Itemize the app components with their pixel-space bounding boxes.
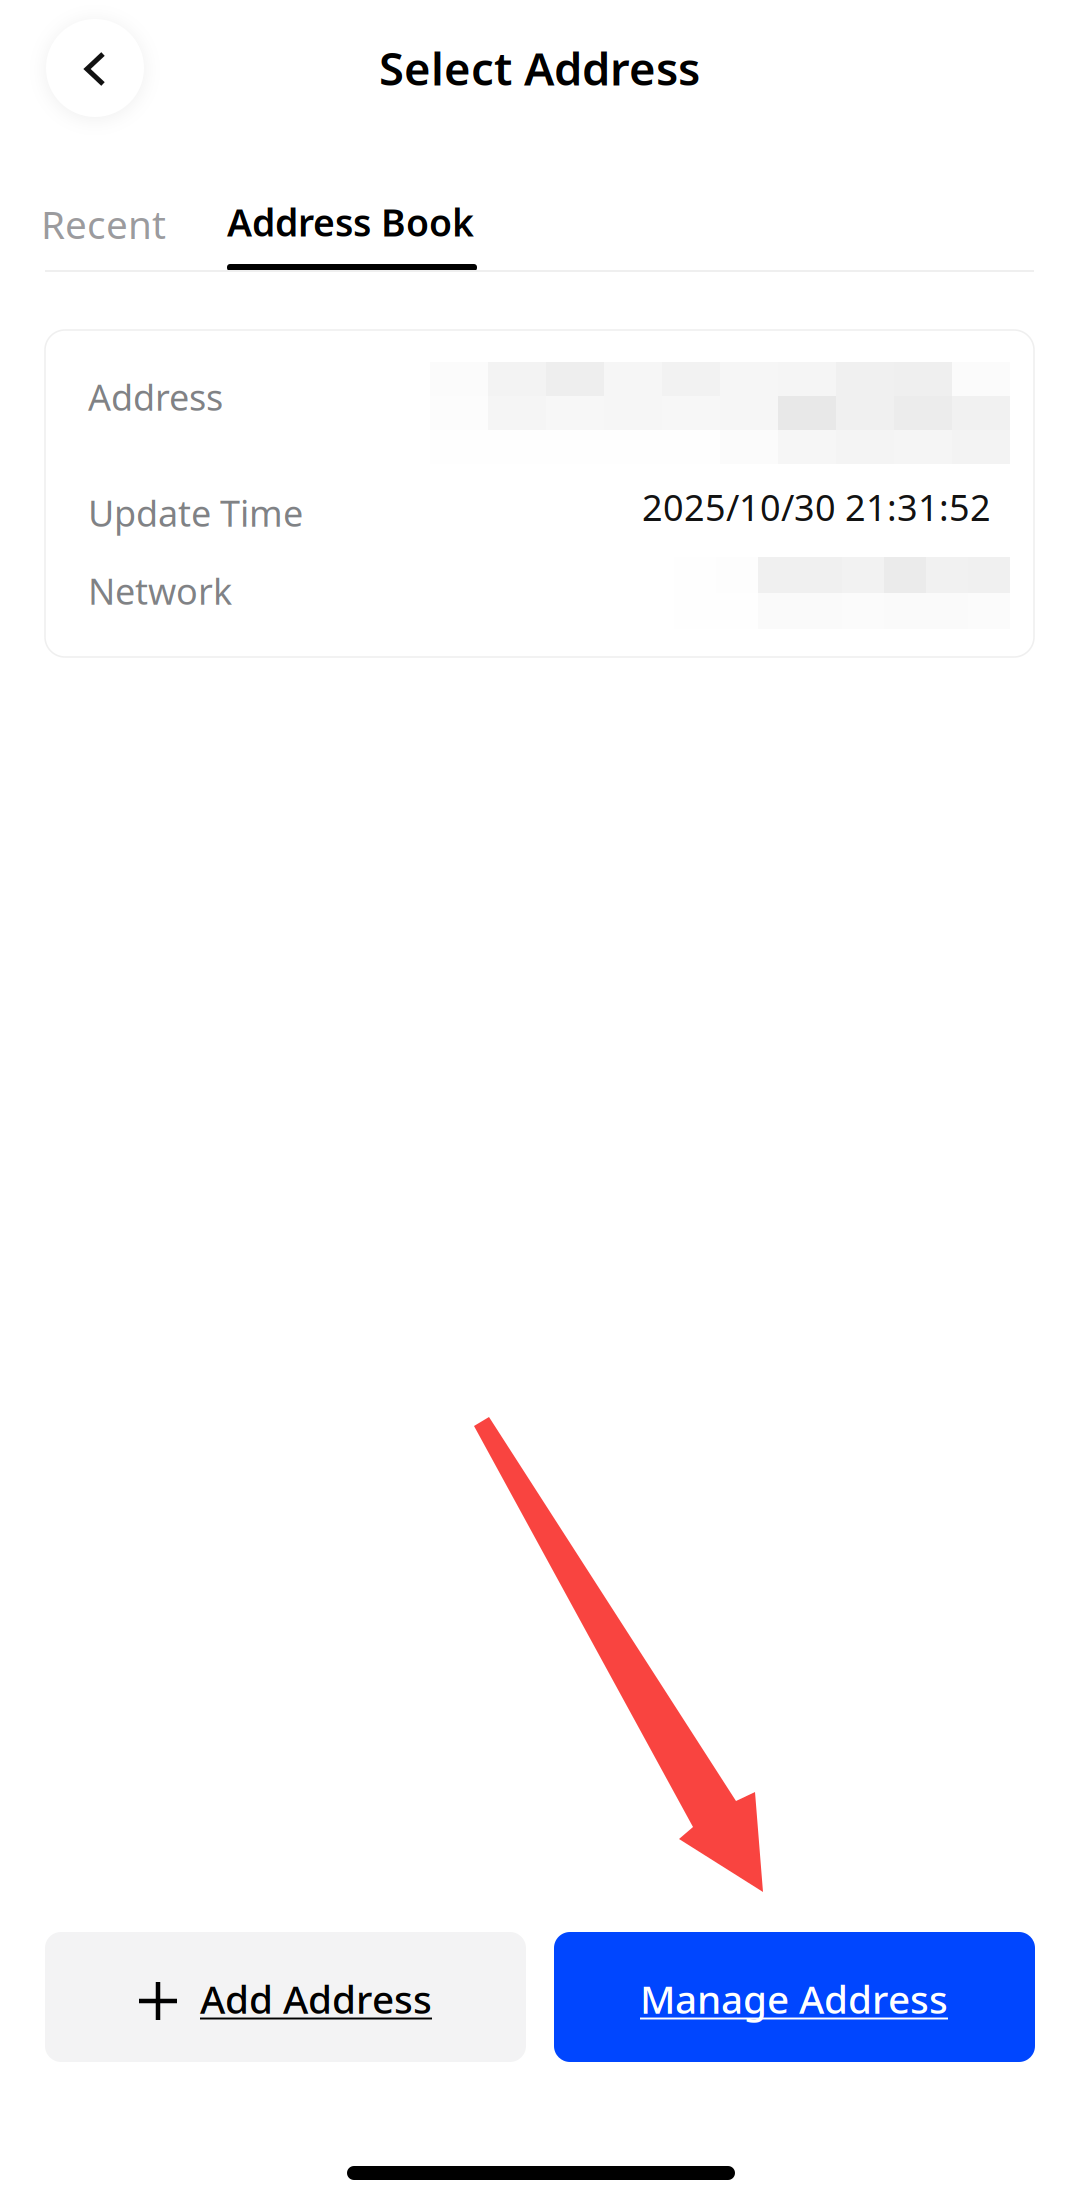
staticText: Update Time: [88, 489, 303, 537]
button[interactable]: Add Address: [45, 1932, 526, 2062]
staticText: Add Address: [200, 1973, 432, 2024]
staticText: Manage Address: [640, 1973, 948, 2024]
staticText: Network: [88, 567, 232, 615]
staticText: Select Address: [379, 38, 700, 98]
staticText: 2025/10/30 21:31:52: [642, 483, 991, 531]
button[interactable]: Address Book: [227, 186, 527, 272]
staticText: Address Book: [227, 197, 474, 247]
button[interactable]: Back: [46, 19, 144, 117]
button[interactable]: Recent: [41, 181, 206, 267]
button[interactable]: Manage Address: [554, 1932, 1035, 2062]
staticText: Address: [88, 373, 223, 421]
staticText: Recent: [41, 198, 166, 250]
